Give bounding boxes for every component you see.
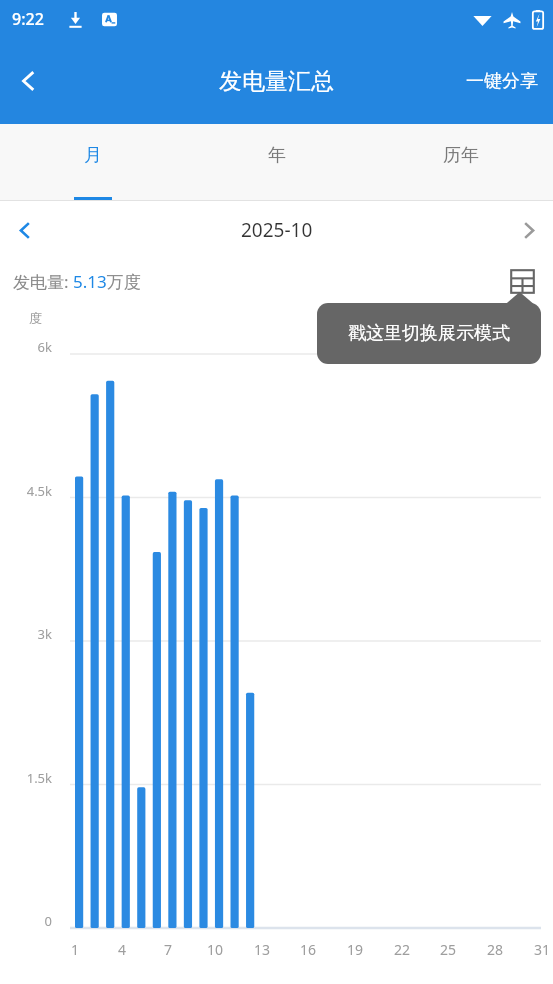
staticText: 3k — [0, 625, 52, 643]
button[interactable]: Back — [0, 52, 58, 110]
button[interactable]: 年 — [185, 124, 369, 200]
staticText: 度 — [29, 310, 42, 326]
staticText: 1 — [71, 940, 80, 959]
staticText: 0 — [0, 912, 52, 930]
staticText: 一键分享 — [466, 70, 538, 93]
button[interactable]: 月 — [0, 124, 185, 200]
staticText: 13 — [254, 940, 271, 959]
staticText: 7 — [164, 940, 173, 959]
staticText: 31 — [534, 940, 551, 959]
button[interactable]: 一键分享 — [451, 58, 553, 105]
staticText: 22 — [394, 940, 411, 959]
button[interactable]: Previous period — [0, 205, 50, 255]
staticText: 28 — [487, 940, 504, 959]
button[interactable]: 历年 — [369, 124, 553, 200]
staticText: 年 — [268, 144, 286, 167]
staticText: 发电量汇总 — [219, 67, 334, 96]
staticText: 2025-10 — [241, 217, 313, 243]
button[interactable]: Next period — [503, 205, 553, 255]
staticText: 月 — [84, 144, 102, 167]
staticText: 历年 — [443, 144, 479, 167]
staticText: 6k — [0, 338, 52, 356]
button[interactable]: Switch display mode — [507, 266, 537, 296]
staticText: 25 — [440, 940, 457, 959]
staticText: 19 — [347, 940, 364, 959]
staticText: 4.5k — [0, 482, 52, 500]
staticText: 16 — [300, 940, 317, 959]
staticText: 1.5k — [0, 769, 52, 787]
staticText: 9:22 — [12, 8, 44, 30]
staticText: 4 — [118, 940, 127, 959]
staticText: 10 — [207, 940, 224, 959]
staticText: 发电量: 5.13万度 — [13, 270, 141, 293]
staticText: 戳这里切换展示模式 — [348, 322, 510, 345]
